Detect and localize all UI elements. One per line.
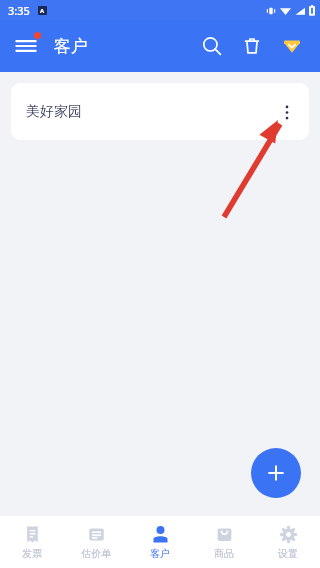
button[interactable]: More options: [270, 95, 304, 129]
staticText: 客户: [150, 547, 170, 560]
button[interactable]: 发票: [0, 525, 64, 560]
button[interactable]: Search: [192, 26, 232, 66]
button[interactable]: 商品: [192, 525, 256, 560]
staticText: 客户: [54, 36, 88, 57]
staticText: 商品: [214, 547, 234, 560]
staticText: 3:35: [8, 3, 30, 18]
button[interactable]: Add customer: [251, 448, 301, 498]
button[interactable]: 估价单: [64, 525, 128, 560]
staticText: 美好家园: [26, 103, 82, 121]
button[interactable]: Menu: [8, 28, 44, 64]
staticText: A: [40, 7, 45, 15]
staticText: 估价单: [81, 547, 111, 560]
button[interactable]: Premium: [272, 26, 312, 66]
staticText: 设置: [278, 547, 298, 560]
button[interactable]: 设置: [256, 525, 320, 560]
button[interactable]: Delete: [232, 26, 272, 66]
button[interactable]: 美好家园: [11, 83, 309, 140]
button[interactable]: 客户: [128, 525, 192, 560]
staticText: 发票: [22, 547, 42, 560]
